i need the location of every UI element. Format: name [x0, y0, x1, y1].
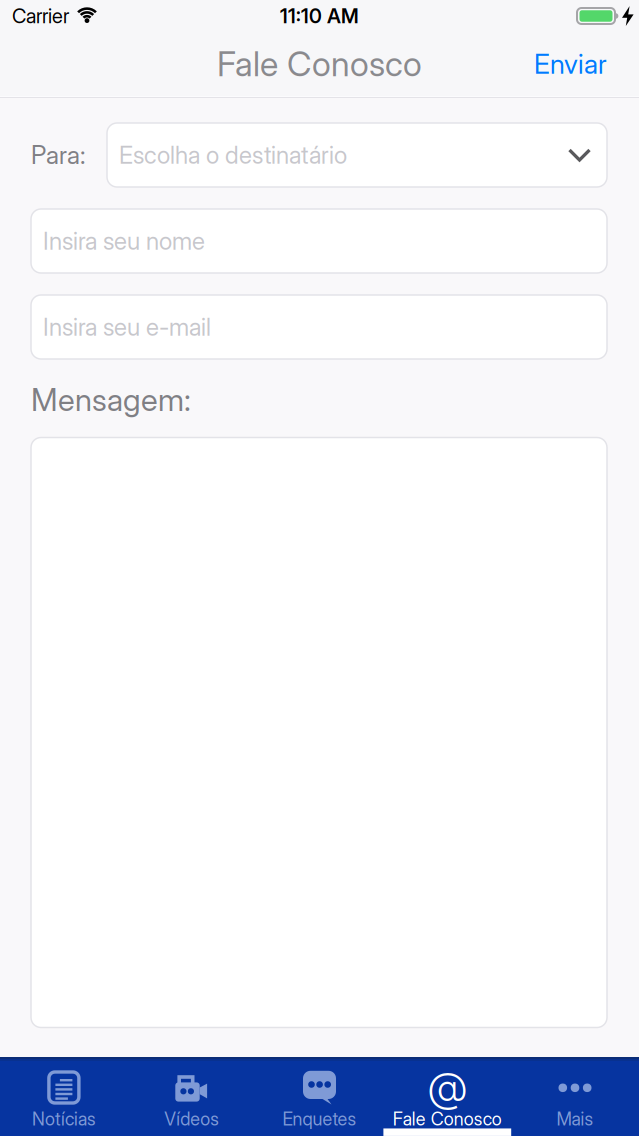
button[interactable]: Vídeos [128, 1057, 256, 1136]
staticText: Insira seu nome [43, 226, 205, 255]
staticText: Escolha o destinatário [119, 140, 347, 169]
staticText: Mensagem: [31, 381, 191, 418]
staticText: @ [428, 1062, 467, 1112]
button[interactable]: Escolha o destinatário [107, 123, 607, 187]
staticText: Fale Conosco [217, 43, 422, 84]
button[interactable]: Insira seu e-mail [31, 295, 607, 359]
button[interactable]: @ [383, 1057, 511, 1136]
staticText: Notícias [32, 1108, 96, 1130]
button[interactable]: Enviar [534, 48, 607, 80]
staticText: Vídeos [164, 1108, 219, 1130]
staticText: Mais [557, 1108, 594, 1130]
staticText: 11:10 AM [280, 4, 359, 28]
button[interactable]: Mais [511, 1057, 639, 1136]
button[interactable]: Notícias [0, 1057, 128, 1136]
staticText: Para: [31, 140, 85, 170]
staticText: Fale Conosco [393, 1108, 502, 1130]
staticText: Insira seu e-mail [43, 312, 211, 341]
staticText: Enquetes [282, 1108, 356, 1130]
staticText: Enviar [534, 48, 607, 80]
staticText: Carrier [12, 4, 69, 28]
button[interactable]: Enquetes [256, 1057, 383, 1136]
button[interactable]: Insira seu nome [31, 209, 607, 273]
